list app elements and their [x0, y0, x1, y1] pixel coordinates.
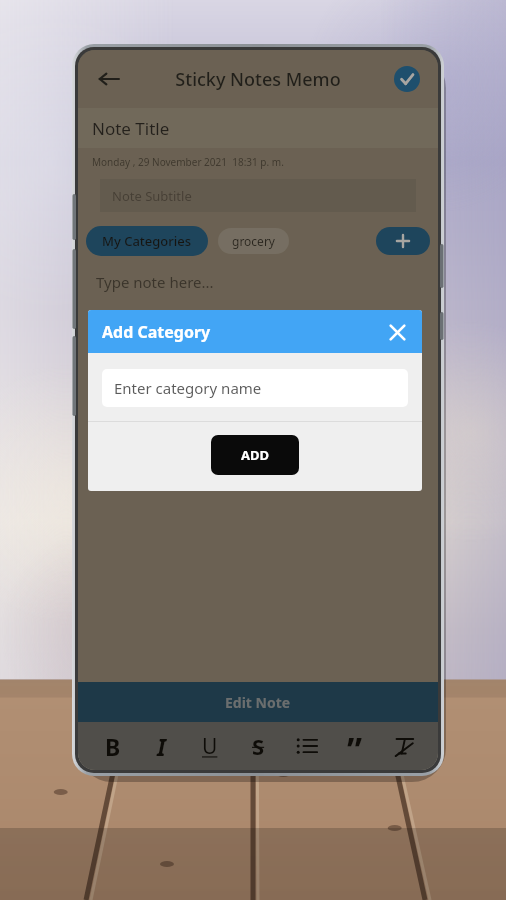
staticText: S [252, 731, 265, 761]
staticText: I [157, 731, 166, 762]
button[interactable]: Underline [190, 726, 230, 766]
button[interactable]: ADD [211, 435, 299, 475]
button[interactable]: Bold [93, 726, 133, 766]
button[interactable]: Edit Note [78, 682, 438, 722]
button[interactable]: grocery [218, 228, 289, 254]
button[interactable]: Back [92, 62, 126, 96]
staticText: Add Category [102, 321, 382, 343]
button[interactable]: Close [382, 317, 412, 347]
staticText: Monday , 29 November 2021 18:31 p. m. [92, 155, 284, 169]
button[interactable]: My Categories [86, 226, 208, 256]
staticText: Note Title [92, 117, 170, 140]
staticText: Edit Note [225, 693, 291, 712]
staticText: My Categories [102, 232, 192, 250]
staticText: Sticky Notes Memo [126, 67, 390, 92]
button[interactable]: Add category [376, 227, 430, 255]
button[interactable]: Save note [390, 62, 424, 96]
staticText: U [202, 732, 218, 761]
staticText: Type note here... [96, 272, 214, 292]
button[interactable]: Note Subtitle [112, 179, 404, 212]
staticText: B [105, 731, 121, 762]
button[interactable]: Italic [141, 726, 181, 766]
button[interactable]: Clear formatting [384, 726, 424, 766]
staticText: Note Subtitle [112, 187, 192, 205]
button[interactable]: Strikethrough [238, 726, 278, 766]
button[interactable]: Bulleted list [287, 726, 327, 766]
button[interactable]: Quote [335, 726, 375, 766]
staticText: ” [347, 726, 363, 766]
staticText: ADD [241, 446, 270, 464]
button[interactable]: Enter category name [114, 369, 396, 407]
staticText: grocery [232, 233, 275, 249]
button[interactable]: Note Title [92, 108, 424, 148]
staticText: Enter category name [114, 378, 262, 398]
